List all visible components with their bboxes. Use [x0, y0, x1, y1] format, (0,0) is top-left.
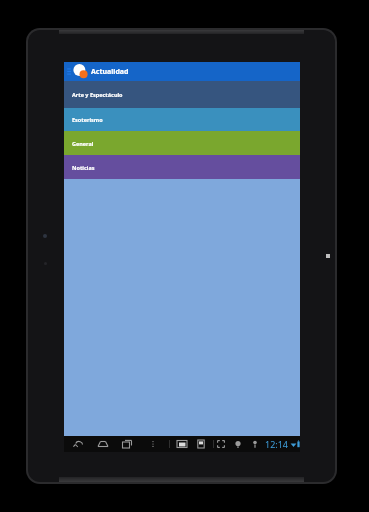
- button[interactable]: More options: [146, 436, 160, 452]
- button[interactable]: Back: [72, 436, 86, 452]
- button[interactable]: Screenshot: [175, 436, 189, 452]
- staticText: General: [72, 140, 94, 147]
- button[interactable]: Esoterismo: [64, 108, 300, 131]
- staticText: Noticias: [72, 164, 95, 171]
- staticText: 12:14: [265, 438, 289, 450]
- button[interactable]: Home: [96, 436, 110, 452]
- button[interactable]: Noticias: [64, 155, 300, 179]
- other: Battery: [297, 440, 300, 448]
- button[interactable]: Storage: [194, 436, 208, 452]
- button[interactable]: Recent apps: [120, 436, 134, 452]
- staticText: Esoterismo: [72, 116, 103, 123]
- button[interactable]: Open navigation drawer: [64, 62, 300, 81]
- other: Wi-Fi: [290, 441, 297, 448]
- staticText: Actualidad: [91, 67, 129, 77]
- staticText: Arte y Espectáculo: [72, 91, 123, 98]
- button[interactable]: Brightness: [231, 436, 245, 452]
- button[interactable]: Fullscreen: [214, 436, 228, 452]
- button[interactable]: Notifications: [248, 436, 262, 452]
- button[interactable]: Arte y Espectáculo: [64, 81, 300, 108]
- other: Open navigation drawer: [66, 62, 72, 81]
- button[interactable]: General: [64, 131, 300, 155]
